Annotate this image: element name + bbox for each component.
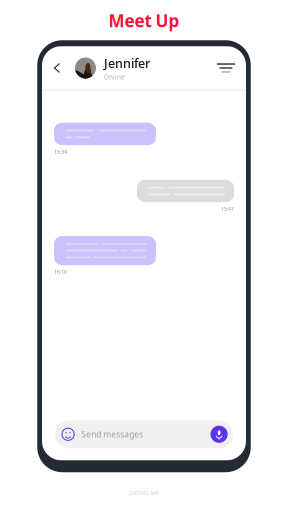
staticText: 15:34 (54, 148, 67, 155)
staticText: Online (104, 73, 125, 81)
button[interactable]: Back (48, 55, 66, 81)
button[interactable]: Send messages (55, 420, 233, 448)
staticText: Send messages (81, 428, 143, 440)
staticText: DATING APP (129, 489, 159, 496)
staticText: Meet Up (108, 9, 179, 32)
staticText: Jennifer (104, 55, 150, 72)
staticText: 15:47 (221, 205, 234, 212)
staticText: 16:10 (54, 268, 67, 275)
button[interactable]: Menu (215, 56, 237, 80)
